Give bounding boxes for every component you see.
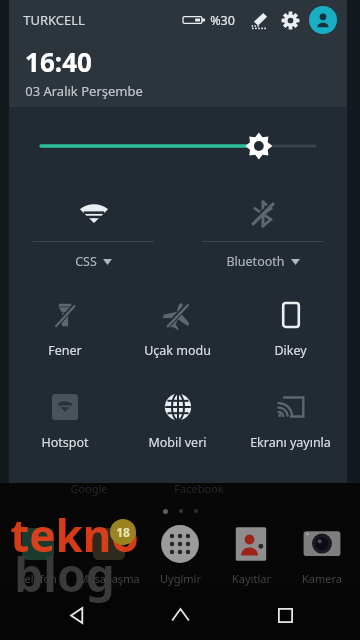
button[interactable]: Bluetooth	[178, 185, 347, 270]
button[interactable]: Uyglmlr	[147, 522, 213, 586]
button[interactable]: Brightness	[41, 126, 315, 166]
staticText: TURKCELL	[23, 11, 85, 29]
button[interactable]: Mobil veri	[121, 377, 234, 451]
staticText: 18	[116, 524, 130, 540]
staticText: Mobil veri	[148, 434, 207, 451]
staticText: Hotspot	[41, 434, 89, 451]
staticText: %30	[210, 12, 235, 29]
staticText: Uçak modu	[144, 342, 211, 359]
staticText: Kamera	[302, 571, 342, 586]
button[interactable]: Uçak modu	[121, 285, 234, 359]
button[interactable]: Fener	[9, 285, 121, 359]
button[interactable]: Hotspot	[9, 377, 121, 451]
button[interactable]: Ekranı yayınla	[234, 377, 347, 451]
staticText: 16:40	[25, 44, 92, 79]
staticText: CSS	[75, 253, 97, 270]
button[interactable]: Telefon	[5, 522, 71, 586]
staticText: Fener	[48, 342, 82, 359]
button[interactable]: Dikey	[234, 285, 347, 359]
staticText: Telefon	[19, 571, 57, 586]
staticText: Bluetooth	[226, 253, 285, 270]
staticText: Uyglmlr	[160, 571, 201, 586]
staticText: 03 Aralık Perşembe	[25, 82, 143, 100]
staticText: blog	[14, 543, 115, 606]
staticText: Ekranı yayınla	[250, 434, 331, 451]
button[interactable]: Kayıtlar	[218, 522, 284, 586]
button[interactable]: CSS	[9, 185, 178, 270]
button[interactable]: Settings	[277, 7, 303, 33]
button[interactable]: Edit	[246, 7, 272, 33]
button[interactable]: Mesajlaşma	[76, 522, 142, 586]
staticText: Dikey	[274, 342, 307, 359]
staticText: Mesajlaşma	[78, 571, 140, 586]
button[interactable]: Kamera	[289, 522, 355, 586]
staticText: Facebook	[174, 481, 224, 496]
button[interactable]: Recent apps	[256, 590, 314, 640]
staticText: tekno	[10, 505, 139, 565]
button[interactable]: Home	[151, 590, 209, 640]
staticText: Kayıtlar	[232, 571, 271, 586]
staticText: Google	[70, 481, 108, 496]
button[interactable]: User profile	[309, 6, 337, 34]
button[interactable]: Back	[47, 590, 105, 640]
